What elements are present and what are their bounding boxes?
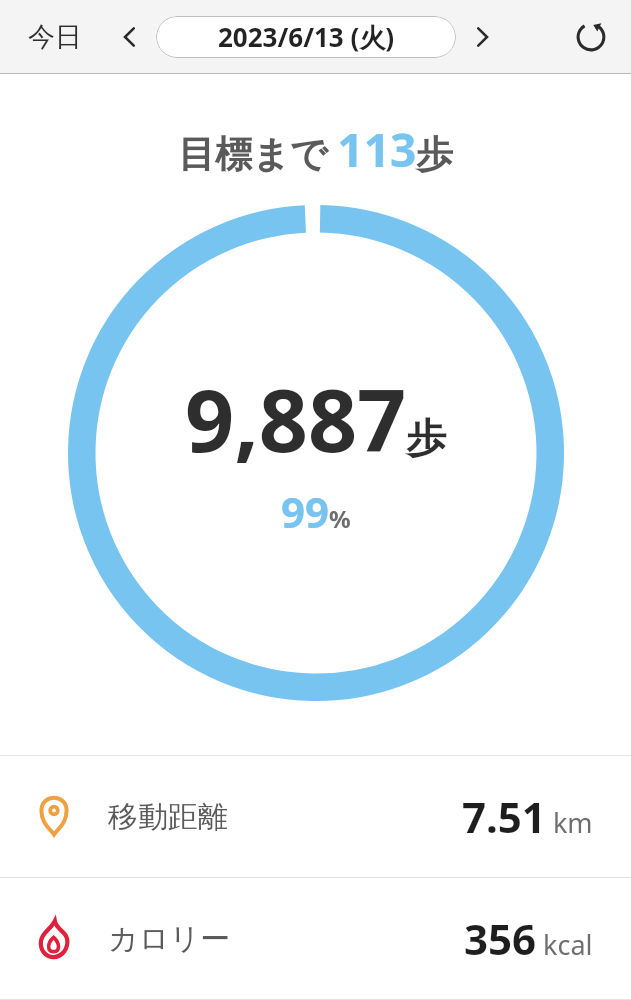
staticText: 356 kcal: [464, 910, 593, 967]
button[interactable]: Previous day: [108, 15, 152, 59]
staticText: カロリー: [108, 920, 231, 958]
button[interactable]: Refresh: [565, 11, 617, 63]
button[interactable]: 今日: [18, 14, 92, 60]
staticText: 7.51 km: [462, 788, 593, 845]
staticText: 今日: [28, 20, 82, 54]
staticText: 移動距離: [108, 798, 228, 836]
staticText: 2023/6/13 (火): [218, 19, 395, 55]
staticText: 99%: [281, 483, 351, 540]
other: Calories: [0, 918, 108, 960]
button[interactable]: 2023/6/13 (火): [156, 16, 456, 58]
button[interactable]: Calories: [0, 878, 631, 999]
staticText: 9,887歩: [185, 360, 447, 477]
other: Distance: [0, 796, 108, 838]
staticText: 目標まで 113歩: [178, 118, 454, 181]
button[interactable]: Next day: [460, 15, 504, 59]
button[interactable]: Distance: [0, 756, 631, 877]
